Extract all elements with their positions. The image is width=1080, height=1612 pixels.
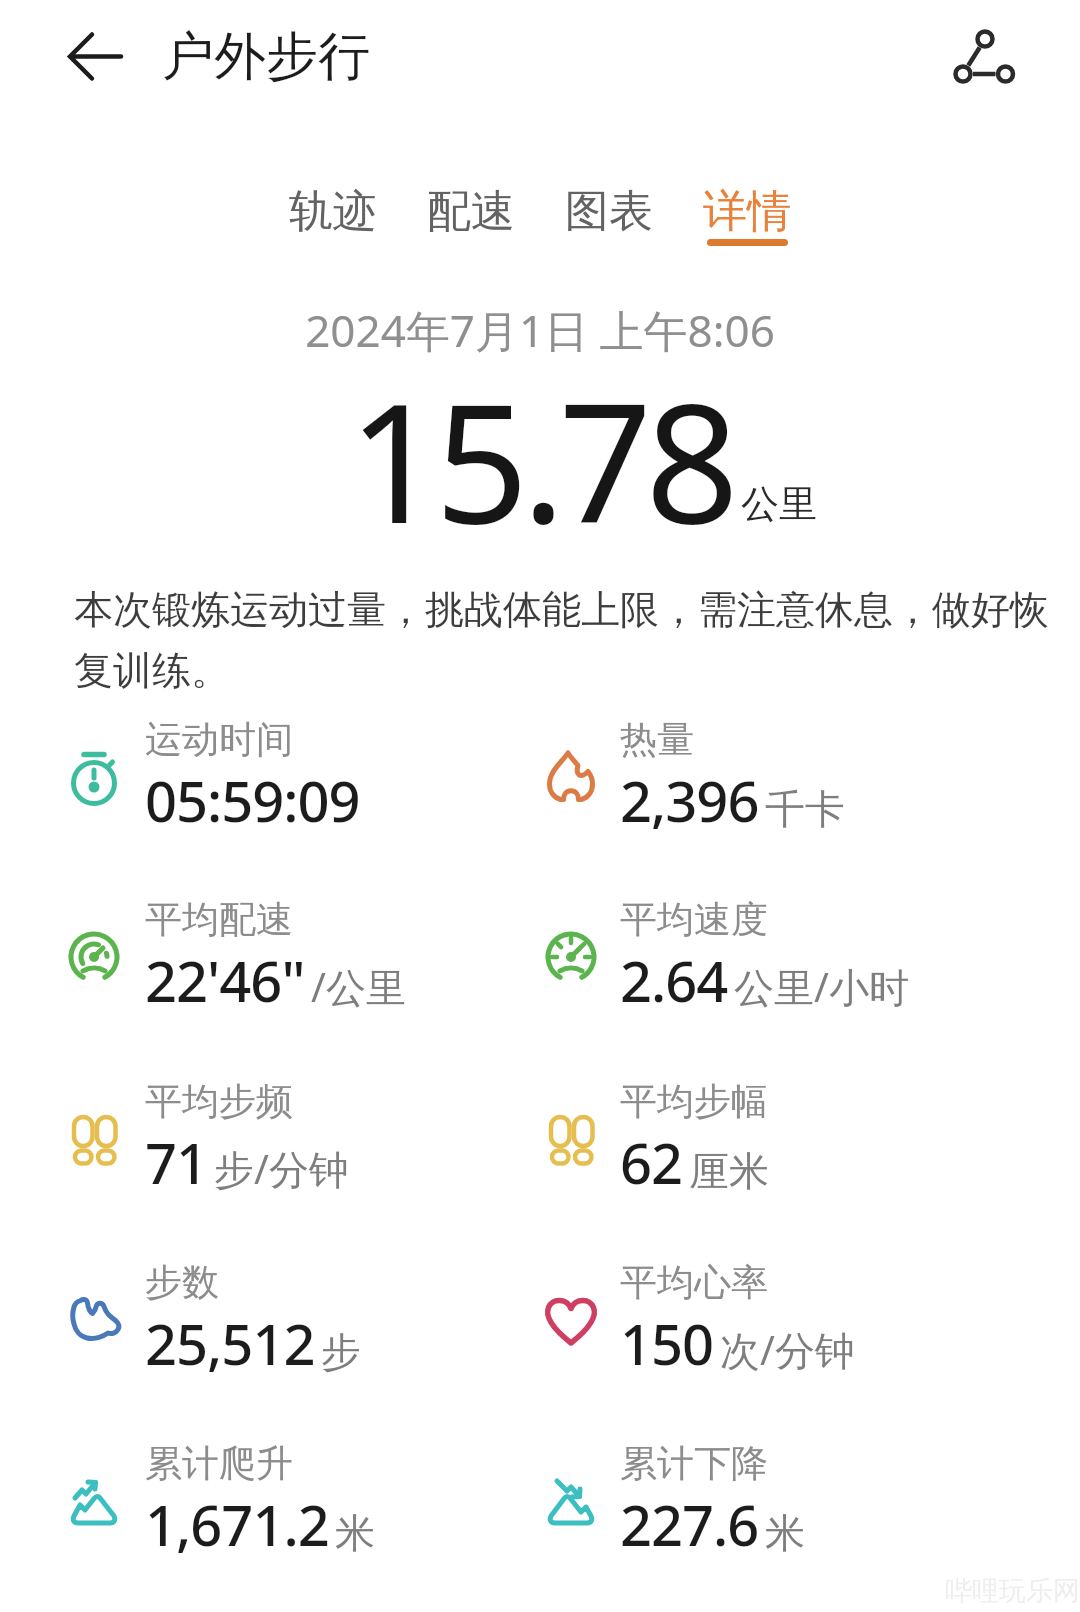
staticText: 配速: [427, 184, 515, 239]
button[interactable]: 轨迹: [289, 184, 377, 246]
staticText: 热量: [620, 716, 694, 763]
staticText: 2,396: [620, 762, 759, 838]
staticText: 厘米: [689, 1146, 769, 1196]
staticText: 1,671.2: [145, 1486, 329, 1562]
staticText: 62: [620, 1124, 683, 1200]
button[interactable]: 配速: [427, 184, 515, 246]
staticText: 详情: [703, 184, 791, 239]
staticText: 步数: [145, 1259, 219, 1306]
staticText: 运动时间: [145, 716, 293, 763]
staticText: 本次锻炼运动过量，挑战体能上限，需注意休息，做好恢 复训练。: [74, 585, 1049, 696]
button[interactable]: [68, 1257, 508, 1407]
button[interactable]: [545, 1438, 985, 1588]
button[interactable]: [940, 14, 1028, 102]
staticText: 轨迹: [289, 184, 377, 239]
staticText: 公里/小时: [734, 959, 909, 1014]
staticText: 千卡: [765, 784, 845, 834]
button[interactable]: [68, 894, 508, 1044]
staticText: 米: [335, 1508, 375, 1558]
staticText: 平均速度: [620, 896, 768, 943]
staticText: 平均心率: [620, 1259, 768, 1306]
staticText: 图表: [565, 184, 653, 239]
button[interactable]: [58, 24, 128, 94]
button[interactable]: [545, 1076, 985, 1226]
staticText: 15.78: [0, 348, 1080, 571]
staticText: 平均步幅: [620, 1078, 768, 1125]
button[interactable]: [545, 1257, 985, 1407]
button[interactable]: [545, 714, 985, 864]
button[interactable]: 详情: [703, 184, 791, 246]
staticText: 步/分钟: [214, 1141, 349, 1196]
button[interactable]: [68, 1076, 508, 1226]
staticText: 公里: [741, 480, 817, 528]
staticText: 累计爬升: [145, 1440, 293, 1487]
button[interactable]: [545, 894, 985, 1044]
staticText: 步: [321, 1327, 361, 1377]
button[interactable]: [68, 714, 508, 864]
staticText: 22'46": [145, 942, 305, 1018]
staticText: 150: [620, 1305, 714, 1381]
staticText: 05:59:09: [145, 762, 360, 838]
button[interactable]: [68, 1438, 508, 1588]
staticText: 平均配速: [145, 896, 293, 943]
staticText: 平均步频: [145, 1078, 293, 1125]
staticText: 户外步行: [162, 24, 370, 90]
staticText: 2.64: [620, 942, 728, 1018]
staticText: 2024年7月1日 上午8:06: [0, 300, 1080, 360]
button[interactable]: 图表: [565, 184, 653, 246]
staticText: 累计下降: [620, 1440, 768, 1487]
staticText: 71: [145, 1124, 208, 1200]
staticText: 米: [765, 1508, 805, 1558]
staticText: /公里: [311, 959, 406, 1014]
staticText: 25,512: [145, 1305, 315, 1381]
staticText: 227.6: [620, 1486, 759, 1562]
staticText: 次/分钟: [720, 1322, 855, 1377]
staticText: 哔哩玩乐网: [945, 1574, 1080, 1608]
